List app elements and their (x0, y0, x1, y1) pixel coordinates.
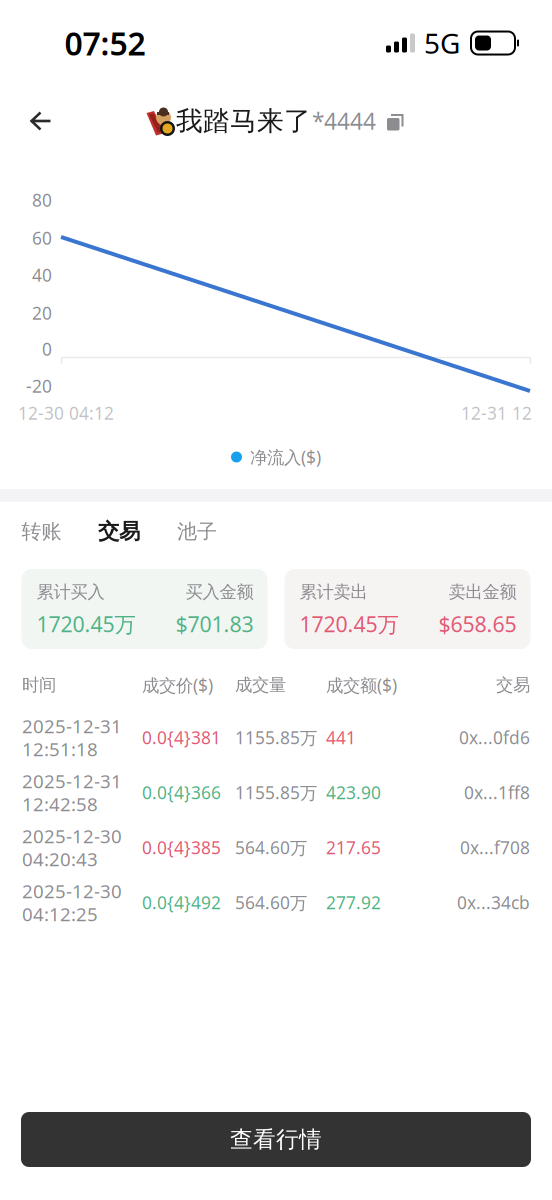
staticText: 0.0{4}492 (142, 891, 221, 914)
staticText: 1155.85万 (235, 726, 317, 749)
staticText: 0x...34cb (457, 891, 530, 914)
staticText: 04:12:25 (22, 901, 98, 926)
staticText: -20 (26, 374, 52, 397)
staticText: 217.65 (326, 836, 381, 859)
staticText: 564.60万 (235, 891, 307, 914)
staticText: 0.0{4}366 (142, 781, 221, 804)
button[interactable]: 查看行情 (21, 1112, 531, 1167)
button[interactable]: 池子 (158, 505, 236, 558)
button[interactable]: 2025-12-31 (0, 710, 552, 765)
staticText: 0x...0fd6 (459, 726, 530, 749)
staticText: 04:20:43 (22, 846, 98, 871)
staticText: 423.90 (326, 781, 381, 804)
staticText: 12:51:18 (22, 736, 98, 761)
staticText: 转账 (21, 519, 61, 544)
staticText: 卖出金额 (448, 581, 516, 603)
staticText: 交易 (496, 674, 530, 696)
staticText: 2025-12-30 (22, 824, 122, 848)
staticText: 12-31 12 (461, 401, 532, 424)
staticText: 成交量 (235, 674, 286, 696)
staticText: 0.0{4}381 (142, 726, 221, 749)
staticText: 12-30 04:12 (18, 401, 114, 424)
staticText: 2025-12-31 (22, 769, 122, 793)
button[interactable]: 2025-12-30 (0, 820, 552, 875)
staticText: 0 (42, 337, 52, 360)
staticText: $658.65 (438, 610, 516, 638)
button[interactable]: 2025-12-30 (0, 875, 552, 930)
staticText: 2025-12-30 (22, 879, 122, 903)
staticText: 60 (32, 226, 52, 249)
staticText: 277.92 (326, 891, 381, 914)
staticText: 07:52 (64, 22, 145, 64)
staticText: 1720.45万 (36, 610, 135, 638)
staticText: 0.0{4}385 (142, 836, 221, 859)
staticText: 池子 (177, 519, 217, 544)
staticText: 1155.85万 (235, 781, 317, 804)
staticText: 净流入($) (250, 445, 321, 468)
staticText: 成交价($) (142, 673, 213, 696)
staticText: 累计买入 (36, 581, 104, 603)
staticText: 20 (32, 301, 52, 324)
staticText: 441 (326, 726, 356, 749)
staticText: 时间 (22, 674, 56, 696)
staticText: *4444 (312, 106, 376, 136)
staticText: 累计卖出 (299, 581, 367, 603)
staticText: 买入金额 (185, 581, 253, 603)
staticText: 查看行情 (230, 1126, 322, 1153)
button[interactable]: 交易 (80, 505, 158, 558)
staticText: 成交额($) (326, 673, 397, 696)
staticText: 2025-12-31 (22, 714, 122, 738)
staticText: 5G (424, 24, 460, 62)
staticText: $701.83 (175, 610, 253, 638)
staticText: 0x...1ff8 (464, 781, 530, 804)
staticText: 12:42:58 (22, 791, 98, 816)
staticText: 80 (32, 188, 52, 211)
button[interactable]: Copy address (376, 99, 408, 143)
staticText: 40 (32, 263, 52, 286)
button[interactable]: 2025-12-31 (0, 765, 552, 820)
staticText: 我踏马来了 (176, 105, 311, 137)
button[interactable]: Back (14, 94, 68, 148)
staticText: 564.60万 (235, 836, 307, 859)
staticText: 交易 (98, 518, 140, 545)
staticText: 0x...f708 (460, 836, 530, 859)
button[interactable]: 转账 (3, 505, 80, 558)
staticText: 1720.45万 (299, 610, 398, 638)
